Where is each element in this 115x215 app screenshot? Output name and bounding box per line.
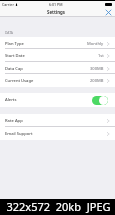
staticText: Carrier <box>2 2 14 7</box>
button[interactable]: Plan Type <box>0 37 115 50</box>
staticText: 322x572 20kb JPEG <box>6 199 111 214</box>
staticText: Start Date <box>5 53 25 59</box>
staticText: Email Support <box>5 131 33 137</box>
staticText: Alerts <box>5 97 17 103</box>
staticText: DATA <box>5 30 13 34</box>
button[interactable]: Email Support <box>0 127 115 140</box>
button[interactable]: Data Cap <box>0 62 115 75</box>
staticText: Rate App <box>5 118 23 124</box>
staticText: Plan Type <box>5 41 24 47</box>
staticText: Monthly <box>87 41 104 47</box>
staticText: 1st <box>98 53 104 59</box>
staticText: 6:01 PM <box>49 2 63 7</box>
staticText: Data Cap <box>5 66 23 72</box>
staticText: Settings <box>47 9 65 15</box>
button[interactable]: Current Usage <box>0 74 115 87</box>
button[interactable]: Start Date <box>0 49 115 62</box>
staticText: 300MB <box>90 66 104 72</box>
button[interactable]: Alerts <box>0 93 115 107</box>
button[interactable]: Rate App <box>0 114 115 127</box>
button[interactable]: Close <box>104 8 113 17</box>
staticText: Current Usage <box>5 78 34 84</box>
staticText: 200MB <box>90 78 104 84</box>
